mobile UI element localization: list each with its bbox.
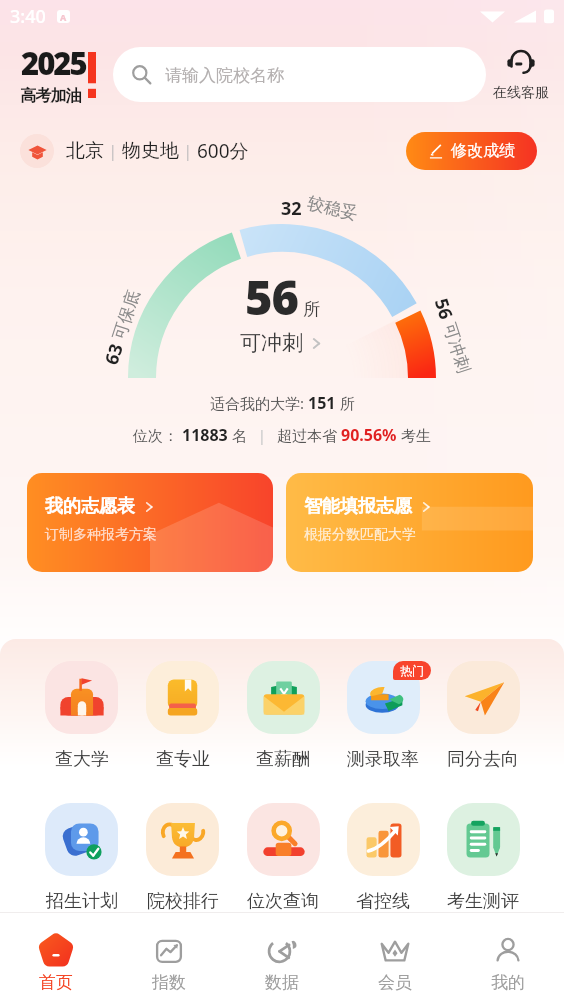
staticText: A: [60, 11, 67, 23]
staticText: 151: [308, 392, 336, 414]
staticText: 56: [429, 295, 459, 323]
staticText: 招生计划: [46, 890, 118, 913]
staticText: |: [179, 140, 197, 162]
button[interactable]: 查大学: [31, 661, 132, 771]
staticText: 指数: [152, 972, 186, 993]
staticText: 90.56%: [341, 424, 397, 446]
staticText: 超过本省: [277, 425, 341, 445]
staticText: 适合我的大学:: [210, 393, 308, 413]
staticText: 测录取率: [347, 748, 419, 771]
staticText: 查大学: [55, 748, 109, 771]
button[interactable]: 请输入院校名称: [113, 47, 486, 102]
button[interactable]: 同分去向: [433, 661, 533, 771]
staticText: 63: [99, 340, 129, 368]
staticText: 请输入院校名称: [165, 65, 284, 86]
staticText: |: [247, 426, 277, 445]
staticText: 修改成绩: [451, 141, 515, 161]
staticText: 3:40: [10, 4, 46, 29]
staticText: 较稳妥: [305, 192, 360, 224]
staticText: 位次：: [133, 425, 182, 445]
staticText: 考生测评: [447, 890, 519, 913]
button[interactable]: 热门: [333, 661, 433, 771]
button[interactable]: 首页: [0, 924, 112, 993]
staticText: 智能填报志愿: [304, 495, 412, 518]
staticText: 院校排行: [147, 890, 219, 913]
button[interactable]: 位次查询: [233, 803, 333, 913]
button[interactable]: 院校排行: [132, 803, 233, 913]
staticText: 高考加油: [21, 86, 81, 106]
staticText: 查专业: [156, 748, 210, 771]
staticText: |: [104, 140, 122, 162]
staticText: 数据: [265, 972, 299, 993]
staticText: 首页: [39, 972, 73, 993]
staticText: 位次查询: [247, 890, 319, 913]
staticText: 32: [281, 196, 302, 221]
staticText: 考生: [397, 425, 431, 445]
staticText: 物史地: [122, 139, 179, 163]
staticText: 2025: [21, 42, 86, 84]
button[interactable]: 数据: [225, 924, 338, 993]
staticText: 北京: [66, 139, 104, 163]
staticText: 查薪酬: [256, 748, 310, 771]
staticText: 订制多种报考方案: [45, 526, 157, 544]
staticText: 所: [303, 299, 320, 320]
button[interactable]: 考生测评: [433, 803, 533, 913]
staticText: 可冲刺: [439, 320, 474, 375]
staticText: 56: [245, 265, 299, 329]
staticText: 600分: [197, 138, 249, 164]
button[interactable]: 我的志愿表: [27, 473, 273, 572]
staticText: 所: [336, 393, 355, 413]
button[interactable]: 查薪酬: [233, 661, 333, 771]
staticText: 我的: [491, 972, 525, 993]
staticText: 我的志愿表: [45, 495, 135, 518]
staticText: 同分去向: [447, 748, 519, 771]
button[interactable]: 招生计划: [31, 803, 132, 913]
button[interactable]: 查专业: [132, 661, 233, 771]
staticText: 热门: [400, 663, 424, 678]
staticText: 11883: [182, 424, 228, 446]
staticText: 可冲刺: [240, 330, 303, 356]
button[interactable]: 省控线: [333, 803, 433, 913]
staticText: 在线客服: [493, 84, 549, 102]
button[interactable]: 我的: [451, 924, 564, 993]
button[interactable]: 指数: [112, 924, 225, 993]
staticText: 会员: [378, 972, 412, 993]
button[interactable]: 修改成绩: [406, 132, 537, 170]
button[interactable]: 会员: [338, 924, 451, 993]
button[interactable]: 智能填报志愿: [286, 473, 533, 572]
staticText: 省控线: [356, 890, 410, 913]
button[interactable]: 在线客服: [488, 47, 554, 102]
staticText: 名: [228, 425, 247, 445]
staticText: 可保底: [109, 288, 144, 343]
staticText: 根据分数匹配大学: [304, 526, 416, 544]
